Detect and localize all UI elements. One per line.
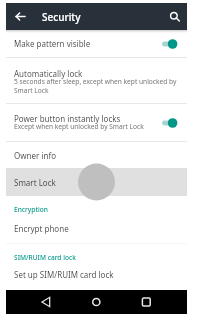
- button[interactable]: Back: [35, 290, 57, 314]
- staticText: 5 seconds after sleep, except when kept …: [14, 77, 178, 95]
- button[interactable]: Toggle setting: [161, 38, 178, 50]
- staticText: Make pattern visible: [14, 38, 161, 49]
- button[interactable]: Owner info: [6, 142, 187, 168]
- button[interactable]: Set up SIM/RUIM card lock: [6, 262, 187, 286]
- button[interactable]: Toggle setting: [161, 117, 178, 129]
- button[interactable]: Make pattern visible: [6, 30, 187, 57]
- button[interactable]: Recent apps: [135, 290, 157, 314]
- staticText: Owner info: [14, 150, 56, 161]
- button[interactable]: Smart Lock: [6, 168, 187, 196]
- button[interactable]: Navigate up: [10, 6, 31, 27]
- staticText: Except when kept unlocked by Smart Lock: [14, 122, 144, 131]
- button[interactable]: Search: [164, 6, 185, 27]
- staticText: SIM/RUIM card lock: [14, 253, 76, 262]
- button[interactable]: Home: [85, 290, 107, 314]
- button[interactable]: Power button instantly locks: [6, 104, 187, 141]
- staticText: Automatically lock: [14, 68, 83, 79]
- button[interactable]: Automatically lock: [6, 58, 187, 103]
- staticText: Set up SIM/RUIM card lock: [14, 269, 114, 280]
- staticText: Smart Lock: [14, 177, 56, 188]
- staticText: Security: [42, 10, 81, 24]
- staticText: Power button instantly locks: [14, 113, 121, 124]
- button[interactable]: Encrypt phone: [6, 216, 187, 240]
- staticText: Encryption: [14, 205, 48, 214]
- staticText: Encrypt phone: [14, 223, 69, 234]
